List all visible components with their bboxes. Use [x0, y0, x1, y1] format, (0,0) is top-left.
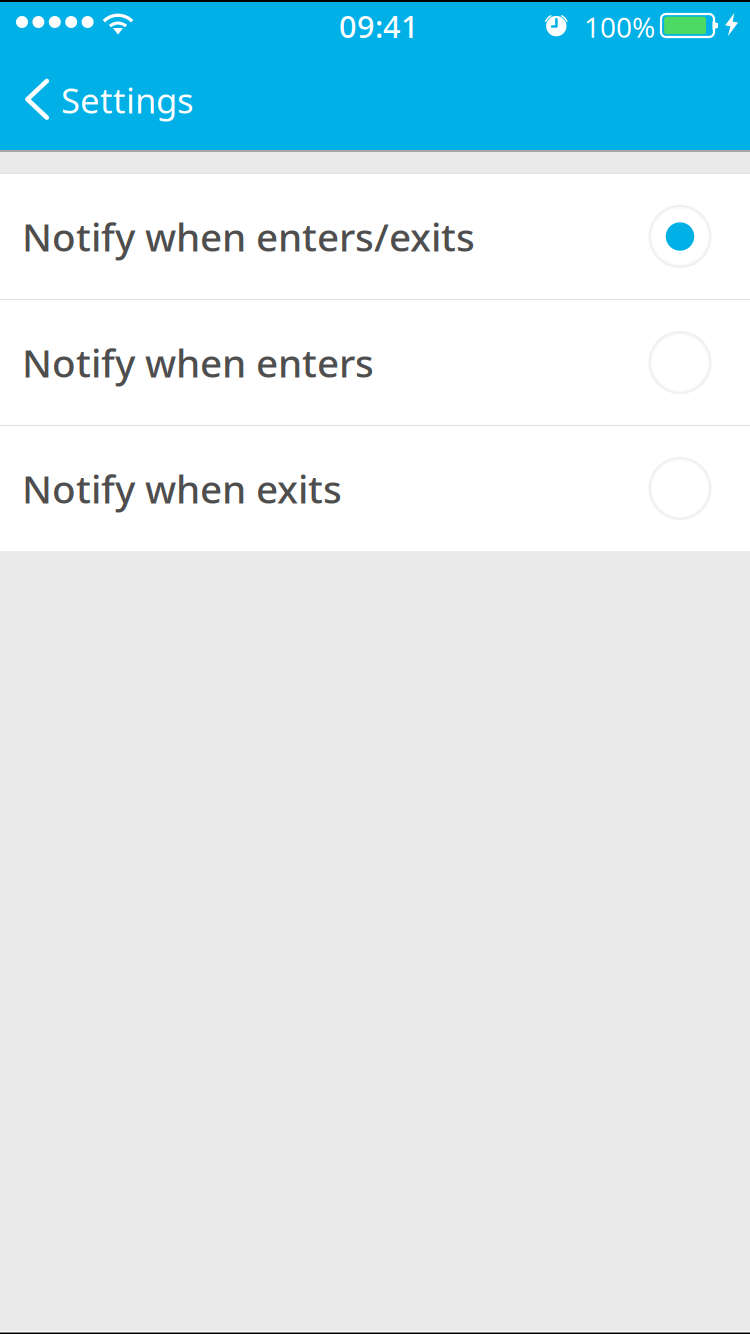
staticText: 100% [584, 8, 655, 46]
staticText: 09:41 [339, 6, 419, 46]
button[interactable]: Notify when exits [0, 426, 750, 551]
button[interactable]: Back to Settings [0, 50, 215, 150]
button[interactable]: Notify when enters [0, 300, 750, 425]
staticText: Notify when enters [22, 337, 374, 388]
staticText: Notify when exits [22, 463, 342, 514]
staticText: Notify when enters/exits [22, 211, 475, 262]
button[interactable]: Notify when enters/exits [0, 174, 750, 299]
staticText: Settings [61, 77, 194, 123]
